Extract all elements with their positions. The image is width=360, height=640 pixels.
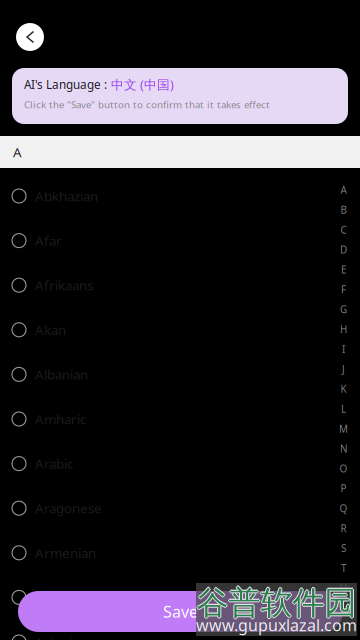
staticText: 谷普软件园 xyxy=(196,583,356,623)
staticText: A xyxy=(340,183,346,197)
staticText: Akan xyxy=(35,321,66,339)
staticText: Q xyxy=(339,502,347,515)
staticText: 谷普软件园 xyxy=(196,582,356,622)
staticText: Abkhazian xyxy=(35,187,98,205)
staticText: B xyxy=(340,203,346,217)
staticText: Afrikaans xyxy=(35,276,93,294)
staticText: P xyxy=(340,482,346,495)
staticText: 中文 (中国) xyxy=(107,76,174,93)
staticText: D xyxy=(340,243,347,256)
button[interactable]: Back xyxy=(16,23,44,51)
button[interactable]: Afar xyxy=(0,219,326,263)
staticText: Afar xyxy=(35,231,62,250)
button[interactable]: Albanian xyxy=(0,352,326,396)
staticText: J xyxy=(342,362,345,376)
staticText: L xyxy=(341,402,346,416)
staticText: O xyxy=(339,462,347,475)
staticText: 谷普软件园 xyxy=(195,583,355,623)
staticText: I xyxy=(342,342,345,356)
staticText: K xyxy=(340,382,346,396)
staticText: E xyxy=(341,263,346,276)
staticText: 谷普软件园 xyxy=(196,584,356,624)
staticText: Aragonese xyxy=(35,499,102,517)
staticText: Arabic xyxy=(35,454,73,473)
staticText: Armenian xyxy=(35,544,96,562)
staticText: Click the "Save" button to confirm that … xyxy=(24,98,270,111)
button[interactable]: Akan xyxy=(0,308,326,352)
button[interactable]: Aragonese xyxy=(0,486,326,530)
button[interactable]: Amharic xyxy=(0,397,326,441)
staticText: Amharic xyxy=(35,410,86,428)
staticText: Albanian xyxy=(35,365,88,383)
staticText: F xyxy=(341,283,346,296)
staticText: Save xyxy=(163,601,198,622)
staticText: S xyxy=(341,541,346,555)
staticText: 谷普软件园 xyxy=(198,583,358,623)
staticText: A xyxy=(13,143,22,161)
button[interactable]: Abkhazian xyxy=(0,174,326,218)
staticText: C xyxy=(340,223,346,236)
staticText: M xyxy=(339,422,348,435)
staticText: U xyxy=(340,581,347,595)
staticText: G xyxy=(340,303,347,316)
staticText: H xyxy=(340,323,347,336)
button[interactable]: Asturian xyxy=(0,620,326,640)
button[interactable]: Save xyxy=(18,591,343,632)
button[interactable]: Assamese xyxy=(0,575,326,619)
button[interactable]: Arabic xyxy=(0,442,326,486)
button[interactable]: Armenian xyxy=(0,531,326,575)
staticText: Assamese xyxy=(35,588,97,606)
button[interactable]: Afrikaans xyxy=(0,263,326,307)
staticText: www.gupuxlazal.com xyxy=(196,614,357,636)
staticText: N xyxy=(340,442,347,455)
staticText: AI's Language : xyxy=(24,76,107,92)
staticText: T xyxy=(341,561,346,575)
staticText: R xyxy=(340,522,346,535)
